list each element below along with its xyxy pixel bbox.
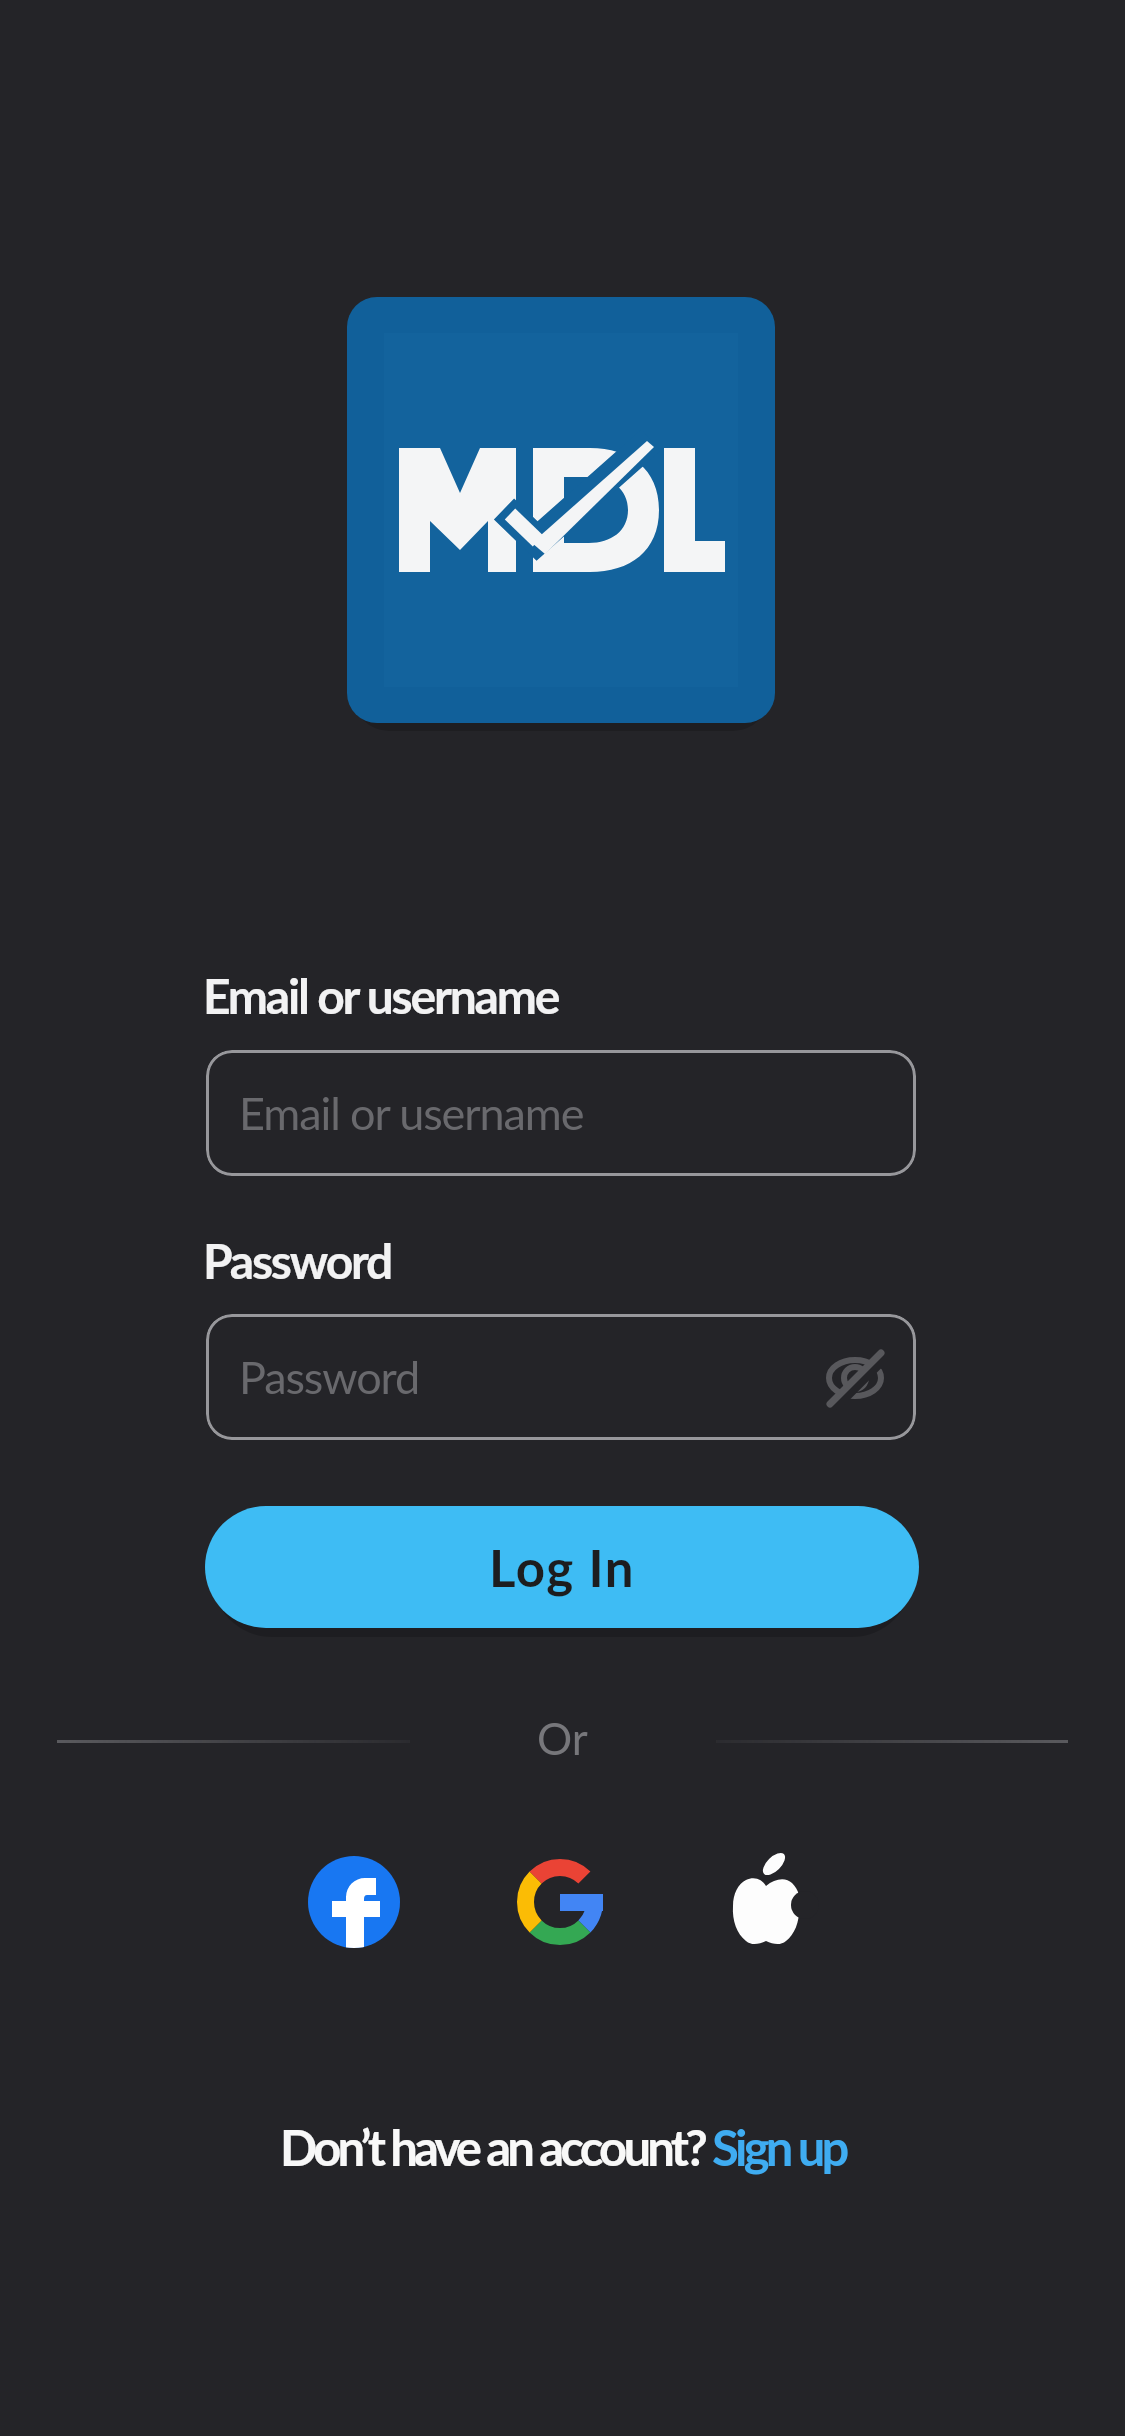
staticText: Don’t have an account? Sign up (280, 2118, 846, 2177)
button[interactable] (820, 1343, 890, 1413)
staticText: Or (537, 1712, 588, 1765)
button[interactable]: Log In (205, 1506, 919, 1628)
button[interactable] (347, 297, 775, 723)
staticText: Log In (489, 1537, 636, 1598)
button[interactable] (308, 1856, 400, 1948)
staticText: Email or username (239, 1086, 584, 1140)
staticText: Password (203, 1232, 392, 1290)
button[interactable]: Password (206, 1314, 916, 1440)
button[interactable] (517, 1859, 603, 1945)
staticText: Email or username (203, 967, 559, 1025)
button[interactable]: Don’t have an account? Sign up (0, 2118, 1125, 2177)
button[interactable] (721, 1848, 811, 1952)
button[interactable]: Email or username (206, 1050, 916, 1176)
staticText: Password (239, 1350, 420, 1404)
